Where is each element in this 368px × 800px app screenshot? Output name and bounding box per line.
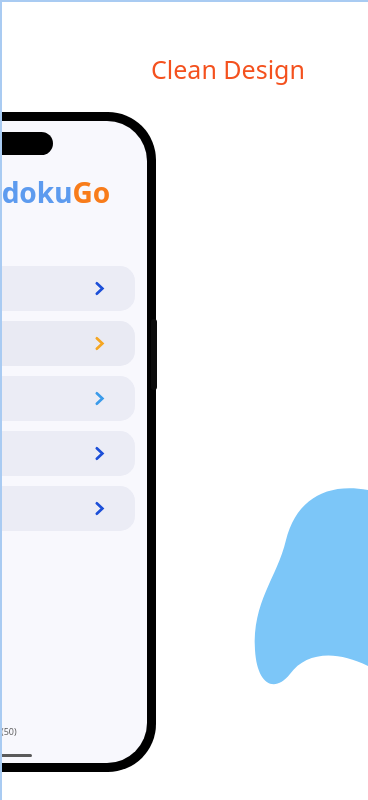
staticText: Clean Design <box>151 52 305 86</box>
button[interactable]: New Game <box>0 266 135 311</box>
staticText: (50) <box>1 725 17 737</box>
button[interactable]: Daily <box>0 376 135 421</box>
button[interactable]: Statistics <box>0 431 135 476</box>
button[interactable]: Settings <box>0 486 135 531</box>
staticText: SudokuGo <box>0 173 111 211</box>
button[interactable]: Continue <box>0 321 135 366</box>
